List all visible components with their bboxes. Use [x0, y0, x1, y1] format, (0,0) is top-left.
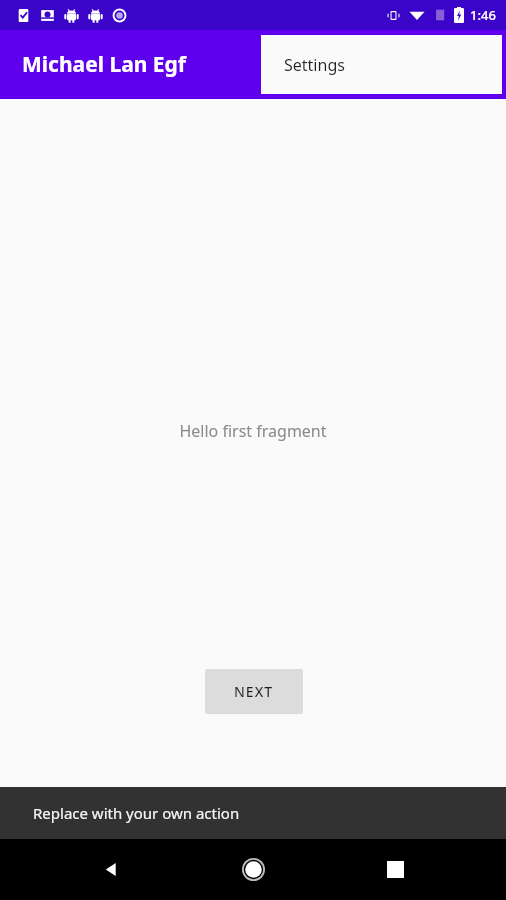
staticText: 1:46 [470, 6, 496, 24]
staticText: NEXT [234, 682, 274, 701]
button[interactable]: Replace with your own action [0, 787, 506, 839]
button[interactable]: Send email [422, 797, 483, 858]
button[interactable]: Settings [261, 35, 502, 94]
button[interactable]: Back [88, 839, 134, 900]
button[interactable]: Recent apps [372, 839, 418, 900]
staticText: Hello first fragment [0, 420, 506, 442]
button[interactable]: Home [230, 839, 276, 900]
button[interactable]: NEXT [205, 669, 303, 714]
staticText: Michael Lan Egf [22, 50, 186, 79]
staticText: Replace with your own action [33, 803, 240, 823]
staticText: Settings [284, 54, 345, 76]
